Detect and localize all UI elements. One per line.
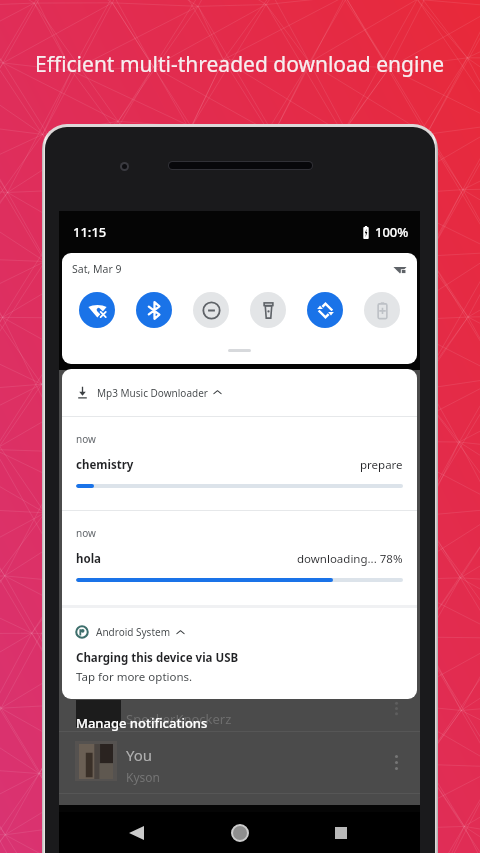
staticText: Android System xyxy=(96,625,171,639)
staticText: Tap for more options. xyxy=(76,669,193,685)
staticText: Kyson xyxy=(126,769,160,785)
button[interactable]: Home xyxy=(216,812,264,853)
button[interactable] xyxy=(79,292,115,328)
staticText: now xyxy=(76,526,96,540)
staticText: SpeakerKnockerz xyxy=(126,710,232,728)
staticText: 11:15 xyxy=(73,223,107,241)
staticText: Sat, Mar 9 xyxy=(72,262,122,276)
staticText: chemistry xyxy=(76,457,134,473)
button[interactable]: Recents xyxy=(317,812,364,853)
button[interactable] xyxy=(364,292,400,328)
staticText: Manage notifications xyxy=(76,714,208,732)
button[interactable] xyxy=(250,292,286,328)
staticText: now xyxy=(76,432,96,446)
staticText: Efficient multi-threaded download engine xyxy=(35,50,445,79)
button[interactable]: Back xyxy=(112,812,161,853)
staticText: Mp3 Music Downloader xyxy=(97,386,208,400)
staticText: downloading... 78% xyxy=(297,551,403,567)
staticText: 100% xyxy=(375,223,409,241)
button[interactable] xyxy=(307,292,343,328)
staticText: Charging this device via USB xyxy=(76,650,239,666)
button[interactable] xyxy=(136,292,172,328)
staticText: You xyxy=(126,745,153,765)
button[interactable] xyxy=(193,292,229,328)
staticText: prepare xyxy=(360,457,403,473)
staticText: hola xyxy=(76,551,101,567)
